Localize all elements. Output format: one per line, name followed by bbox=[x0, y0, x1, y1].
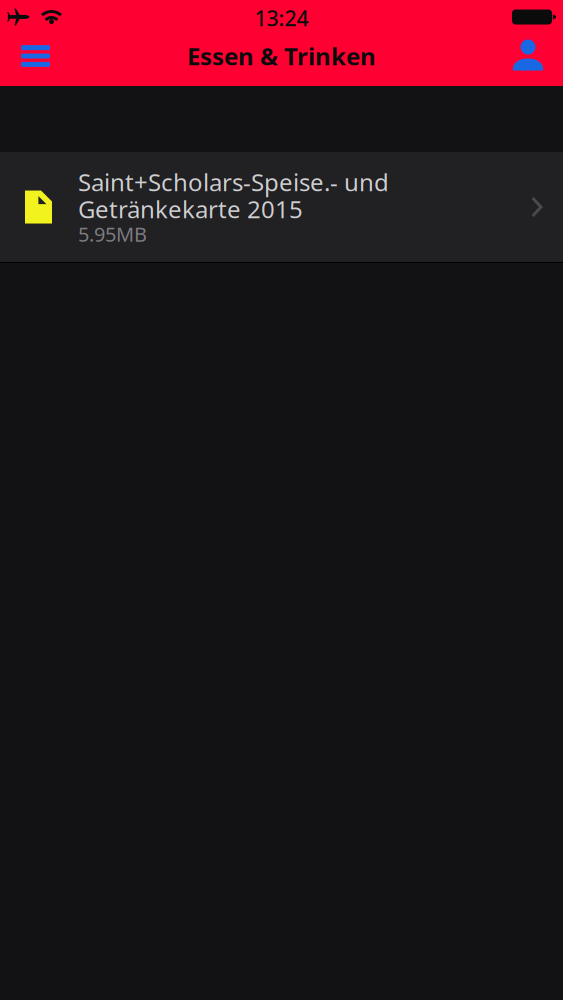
staticText: Getränkekarte 2015 bbox=[78, 193, 303, 225]
button[interactable]: Menu bbox=[0, 34, 68, 86]
staticText: 13:24 bbox=[254, 4, 308, 32]
staticText: 5.95MB bbox=[78, 221, 147, 247]
staticText: Saint+Scholars-Speise.- und bbox=[78, 166, 389, 198]
button[interactable]: Account bbox=[495, 34, 563, 86]
staticText: Essen & Trinken bbox=[187, 40, 376, 72]
button[interactable]: Saint+Scholars-Speise.- und bbox=[0, 152, 563, 262]
